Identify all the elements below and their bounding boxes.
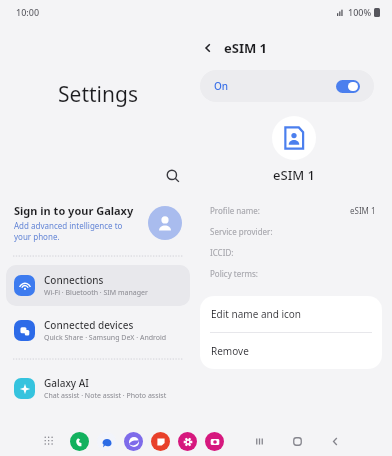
staticText: Profile name: <box>210 205 350 216</box>
button[interactable]: Galaxy AI <box>6 368 190 409</box>
staticText: Add advanced intelligence to your phone. <box>14 220 140 242</box>
button[interactable]: Internet <box>124 432 143 451</box>
staticText: Sign in to your Galaxy <box>14 203 134 218</box>
button[interactable]: All apps <box>38 430 60 452</box>
staticText: Policy terms: <box>210 268 376 279</box>
button[interactable]: Connections <box>6 265 190 306</box>
staticText: Edit name and icon <box>211 307 302 321</box>
staticText: eSIM 1 <box>224 39 268 57</box>
button[interactable]: Back <box>324 430 346 452</box>
button[interactable]: Notes <box>151 432 170 451</box>
staticText: Service provider: <box>210 226 376 237</box>
button[interactable]: Phone <box>70 432 89 451</box>
button[interactable]: On <box>200 70 374 102</box>
staticText: 100% <box>348 6 372 18</box>
staticText: Settings <box>0 80 196 109</box>
button[interactable]: Connected devices <box>6 310 190 351</box>
staticText: eSIM 1 <box>196 166 392 184</box>
button[interactable]: Camera <box>205 432 224 451</box>
staticText: Wi-Fi · Bluetooth · SIM manager <box>44 288 148 298</box>
button[interactable]: Recents <box>248 430 270 452</box>
staticText: Chat assist · Note assist · Photo assist <box>44 391 167 401</box>
staticText: Galaxy AI <box>44 376 89 390</box>
staticText: On <box>214 79 336 93</box>
staticText: Connections <box>44 273 104 287</box>
staticText: Remove <box>211 344 249 358</box>
button[interactable]: Back <box>196 36 220 60</box>
staticText: 10:00 <box>16 6 40 18</box>
button[interactable]: Home <box>286 430 308 452</box>
button[interactable]: Remove <box>200 333 382 369</box>
staticText: ICCID: <box>210 247 376 258</box>
button[interactable]: Search <box>160 163 186 189</box>
button[interactable]: Galaxy Store <box>178 432 197 451</box>
staticText: eSIM 1 <box>350 205 376 216</box>
button[interactable]: Sign in to your Galaxy <box>0 199 196 246</box>
staticText: Connected devices <box>44 318 134 332</box>
button[interactable]: Messages <box>97 432 116 451</box>
staticText: Quick Share · Samsung DeX · Android Auto <box>44 333 182 343</box>
button[interactable]: Edit name and icon <box>200 296 382 332</box>
